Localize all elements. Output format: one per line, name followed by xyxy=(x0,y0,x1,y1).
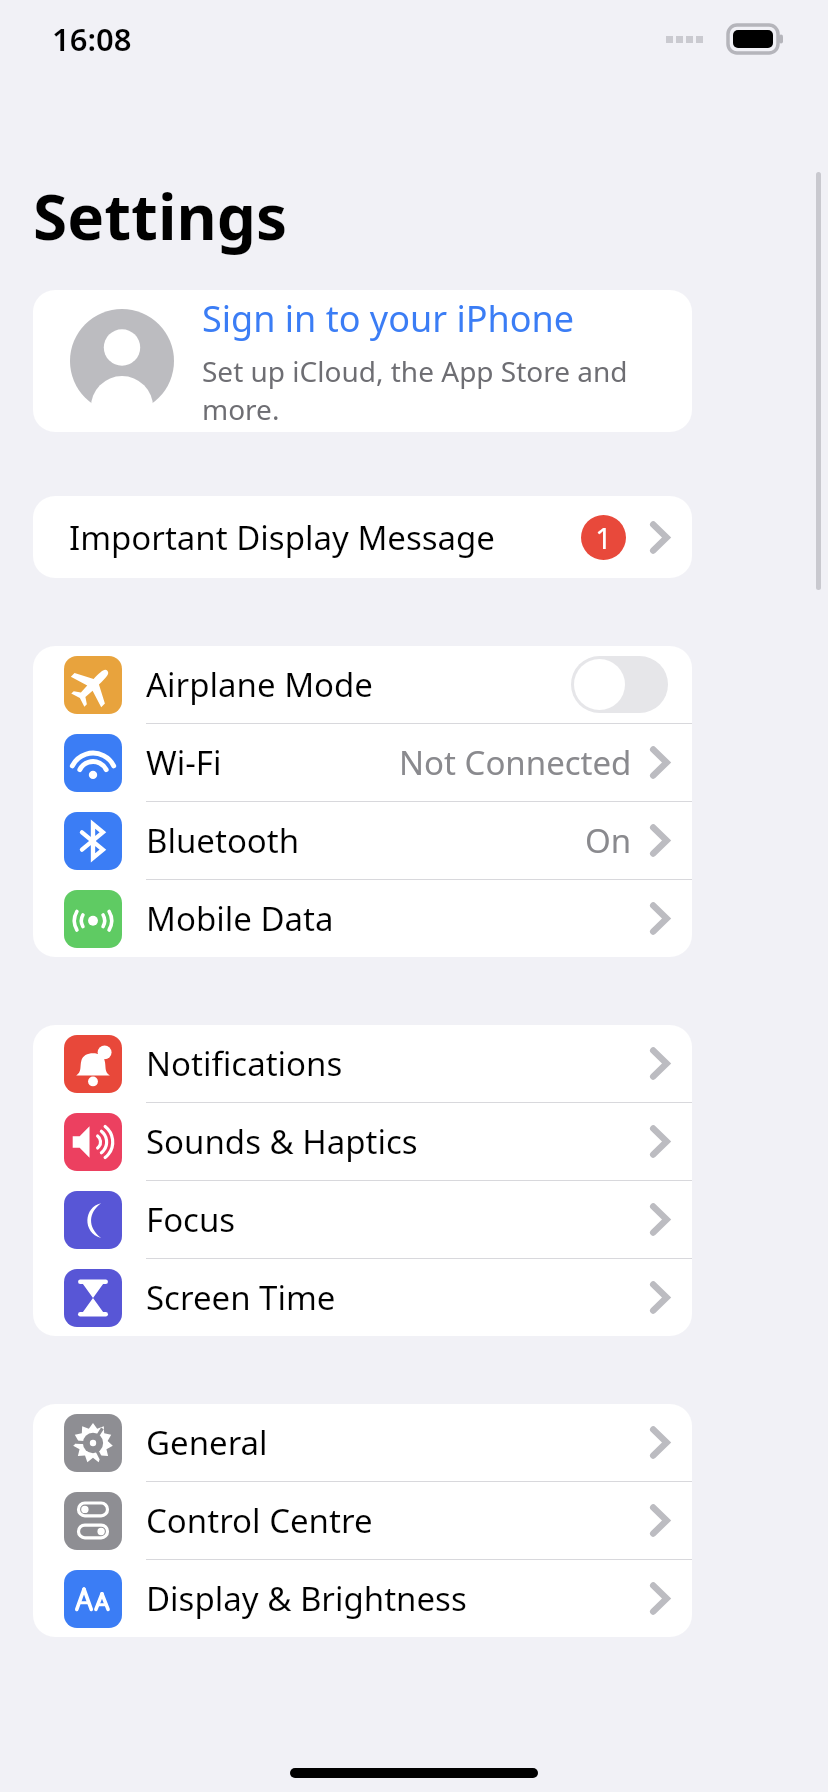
button[interactable]: Important Display Message xyxy=(33,496,692,578)
button[interactable]: Display & Brightness xyxy=(33,1560,692,1637)
button[interactable]: Focus xyxy=(33,1181,692,1258)
button[interactable]: Sounds & Haptics xyxy=(33,1103,692,1180)
staticText: Control Centre xyxy=(146,1498,373,1543)
staticText: Sign in to your iPhone xyxy=(202,294,575,343)
button[interactable]: Wi-Fi xyxy=(33,724,692,801)
staticText: Focus xyxy=(146,1197,236,1242)
staticText: 16:08 xyxy=(52,18,132,60)
staticText: 1 xyxy=(595,518,612,557)
staticText: Sounds & Haptics xyxy=(146,1119,418,1164)
staticText: Settings xyxy=(33,174,288,258)
button[interactable]: Screen Time xyxy=(33,1259,692,1336)
button[interactable]: Airplane Mode xyxy=(33,646,692,723)
staticText: Screen Time xyxy=(146,1275,336,1320)
staticText: General xyxy=(146,1420,268,1465)
staticText: Not Connected xyxy=(399,740,632,785)
button[interactable]: Notifications xyxy=(33,1025,692,1102)
button[interactable]: Bluetooth xyxy=(33,802,692,879)
button[interactable]: Sign in to your iPhone xyxy=(33,290,692,432)
staticText: Wi-Fi xyxy=(146,740,222,785)
button[interactable]: Airplane Mode toggle xyxy=(571,656,668,713)
staticText: Airplane Mode xyxy=(146,662,373,707)
button[interactable]: Mobile Data xyxy=(33,880,692,957)
staticText: Bluetooth xyxy=(146,818,300,863)
button[interactable]: Control Centre xyxy=(33,1482,692,1559)
staticText: Set up iCloud, the App Store and more. xyxy=(202,352,692,428)
staticText: Notifications xyxy=(146,1041,343,1086)
button[interactable]: General xyxy=(33,1404,692,1481)
staticText: Mobile Data xyxy=(146,896,334,941)
staticText: On xyxy=(585,818,632,863)
staticText: Important Display Message xyxy=(69,515,495,560)
staticText: Display & Brightness xyxy=(146,1576,467,1621)
